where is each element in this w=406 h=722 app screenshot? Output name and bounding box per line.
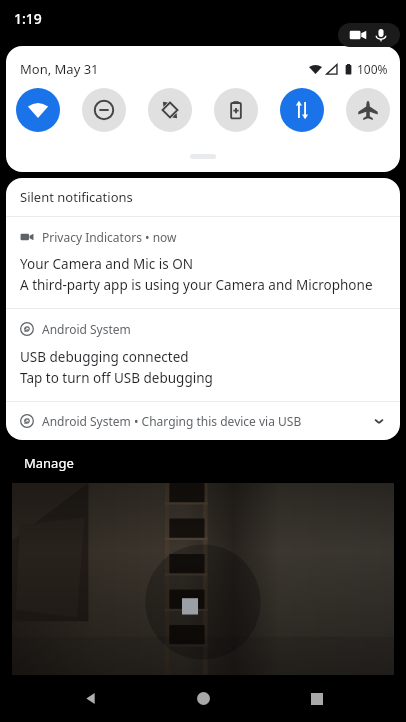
button[interactable]: Privacy Indicators • now bbox=[6, 217, 400, 308]
button[interactable]: Manage bbox=[22, 450, 76, 476]
staticText: Android System bbox=[42, 321, 131, 337]
staticText: Manage bbox=[24, 454, 74, 472]
staticText: Your Camera and Mic is ON bbox=[20, 255, 194, 273]
staticText: 1:19 bbox=[14, 9, 42, 28]
button[interactable]: Battery saver bbox=[214, 88, 258, 132]
button[interactable]: Auto-rotate bbox=[148, 88, 192, 132]
button[interactable]: Back bbox=[66, 675, 114, 722]
staticText: A third-party app is using your Camera a… bbox=[20, 276, 373, 294]
button[interactable]: Do not disturb bbox=[82, 88, 126, 132]
staticText: Mon, May 31 bbox=[20, 60, 99, 78]
button[interactable]: Airplane mode bbox=[346, 88, 390, 132]
staticText: Tap to turn off USB debugging bbox=[20, 369, 213, 387]
staticText: Privacy Indicators • now bbox=[42, 229, 177, 245]
button[interactable]: Home bbox=[179, 675, 227, 722]
button[interactable]: Android System bbox=[6, 309, 400, 401]
staticText: Silent notifications bbox=[20, 188, 133, 206]
staticText: Android System • Charging this device vi… bbox=[42, 413, 302, 429]
staticText: USB debugging connected bbox=[20, 348, 189, 366]
button[interactable]: Wi-Fi bbox=[16, 88, 60, 132]
button[interactable]: Silent notifications bbox=[6, 178, 400, 216]
button[interactable]: Camera and microphone in use bbox=[338, 23, 400, 47]
button[interactable]: Android System • Charging this device vi… bbox=[6, 402, 400, 440]
button[interactable]: Mobile data bbox=[280, 88, 324, 132]
button[interactable]: Recent apps bbox=[293, 675, 341, 722]
staticText: 100% bbox=[357, 61, 388, 77]
